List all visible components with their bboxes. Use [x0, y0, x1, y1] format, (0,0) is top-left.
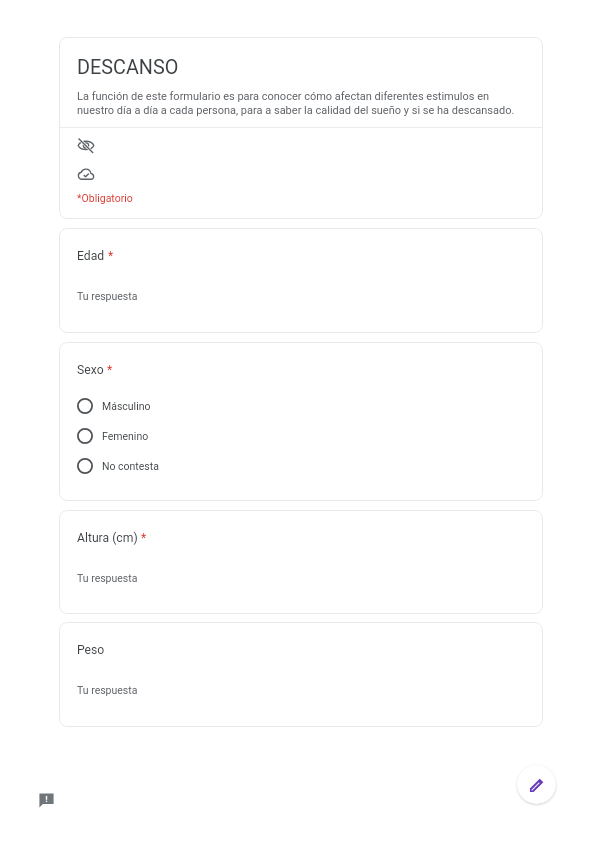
staticText: Tu respuesta [77, 684, 138, 696]
staticText: Tu respuesta [77, 290, 138, 302]
staticText: * [105, 249, 114, 263]
staticText: No contesta [102, 460, 159, 472]
staticText: Peso [77, 643, 105, 657]
button[interactable]: Sexo [59, 342, 543, 501]
staticText: *Obligatorio [77, 192, 133, 204]
button[interactable]: Peso [59, 622, 543, 727]
staticText: La función de este formulario es para co… [77, 90, 523, 117]
staticText: DESCANSO [77, 56, 179, 79]
staticText: Másculino [102, 400, 151, 412]
button[interactable]: Altura (cm) [59, 510, 543, 614]
button[interactable]: DESCANSO [59, 37, 543, 219]
button[interactable]: Edad [59, 228, 543, 333]
staticText: Tu respuesta [77, 572, 138, 584]
button[interactable]: Enviar comentarios [30, 784, 62, 816]
button[interactable]: No contesta [59, 453, 543, 479]
button[interactable]: Femenino [59, 423, 543, 449]
button[interactable]: Editar [517, 765, 556, 804]
staticText: * [104, 363, 113, 377]
staticText: Altura (cm) [77, 531, 138, 545]
staticText: Edad [77, 249, 105, 263]
staticText: Femenino [102, 430, 149, 442]
staticText: Sexo [77, 363, 104, 377]
staticText: * [138, 531, 147, 545]
button[interactable]: Másculino [59, 393, 543, 419]
